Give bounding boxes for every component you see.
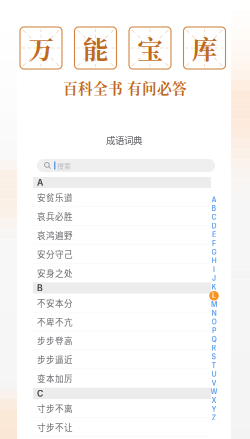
staticText: 安分守己 xyxy=(37,248,73,260)
button[interactable]: 安贫乐道 xyxy=(33,188,211,207)
button[interactable]: D xyxy=(208,222,219,230)
button[interactable]: S xyxy=(208,352,219,361)
button[interactable]: P xyxy=(208,326,219,335)
button[interactable]: R xyxy=(208,344,219,352)
staticText: 百科全书 有问必答 xyxy=(63,77,187,98)
staticText: H xyxy=(211,257,216,265)
staticText: 能 xyxy=(83,30,108,66)
staticText: 搜索 xyxy=(57,160,71,170)
staticText: 寸步不让 xyxy=(37,421,73,434)
button[interactable]: Z xyxy=(208,413,219,422)
staticText: 不卑不亢 xyxy=(37,316,73,328)
staticText: F xyxy=(212,239,216,248)
staticText: P xyxy=(212,326,216,335)
staticText: X xyxy=(211,396,216,405)
button[interactable]: A xyxy=(208,195,219,204)
staticText: M xyxy=(211,300,217,309)
staticText: 哀兵必胜 xyxy=(37,210,73,223)
staticText: D xyxy=(211,222,216,230)
staticText: 宝 xyxy=(137,30,162,66)
button[interactable]: 寸步不离 xyxy=(33,399,211,418)
button[interactable]: K xyxy=(208,283,219,291)
button[interactable]: Q xyxy=(208,335,219,344)
staticText: O xyxy=(211,318,216,326)
staticText: 安身之处 xyxy=(37,267,73,279)
staticText: A xyxy=(211,196,216,204)
staticText: S xyxy=(211,353,216,361)
button[interactable]: 变本加厉 xyxy=(33,369,211,388)
staticText: 安贫乐道 xyxy=(37,191,73,204)
button[interactable]: N xyxy=(208,309,219,318)
staticText: 不安本分 xyxy=(37,297,73,309)
staticText: C xyxy=(37,388,43,399)
staticText: 变本加厉 xyxy=(37,372,73,385)
staticText: Q xyxy=(211,335,216,344)
staticText: 步步逼近 xyxy=(37,353,73,366)
staticText: 哀鸿遍野 xyxy=(37,229,73,241)
staticText: 步步登高 xyxy=(37,335,73,347)
button[interactable]: C xyxy=(208,213,219,222)
button[interactable]: T xyxy=(208,361,219,370)
staticText: L xyxy=(212,292,216,300)
button[interactable]: 哀兵必胜 xyxy=(33,207,211,226)
staticText: 寸步不离 xyxy=(37,402,73,415)
staticText: 成语词典 xyxy=(106,133,142,147)
button[interactable]: 安身之处 xyxy=(33,264,211,282)
button[interactable]: 不安本分 xyxy=(33,293,211,312)
staticText: J xyxy=(212,274,216,282)
button[interactable]: M xyxy=(208,300,219,309)
button[interactable]: F xyxy=(208,239,219,248)
button[interactable]: L xyxy=(208,291,219,300)
button[interactable]: 步步逼近 xyxy=(33,350,211,369)
button[interactable]: O xyxy=(208,318,219,326)
button[interactable]: V xyxy=(208,379,219,387)
staticText: 库 xyxy=(192,30,217,66)
staticText: W xyxy=(210,387,217,396)
staticText: Z xyxy=(211,414,216,422)
button[interactable]: G xyxy=(208,248,219,256)
staticText: B xyxy=(37,283,43,293)
button[interactable]: U xyxy=(208,370,219,379)
staticText: A xyxy=(37,177,43,188)
button[interactable]: E xyxy=(208,230,219,239)
button[interactable]: Y xyxy=(208,405,219,413)
button[interactable]: W xyxy=(208,387,219,396)
staticText: T xyxy=(211,361,216,370)
staticText: R xyxy=(211,344,216,352)
button[interactable]: B xyxy=(208,204,219,213)
button[interactable]: 寸步不让 xyxy=(33,418,211,437)
staticText: E xyxy=(212,230,216,239)
staticText: 万 xyxy=(28,30,53,66)
staticText: V xyxy=(211,379,216,387)
button[interactable]: H xyxy=(208,256,219,265)
button[interactable]: 安分守己 xyxy=(33,245,211,264)
staticText: B xyxy=(211,204,216,213)
staticText: G xyxy=(211,248,216,256)
button[interactable]: J xyxy=(208,274,219,283)
staticText: U xyxy=(211,370,216,378)
staticText: Y xyxy=(211,405,216,413)
button[interactable]: 步步登高 xyxy=(33,331,211,350)
staticText: C xyxy=(211,213,216,221)
button[interactable]: I xyxy=(208,265,219,274)
button[interactable]: X xyxy=(208,396,219,405)
button[interactable]: 哀鸿遍野 xyxy=(33,226,211,245)
button[interactable]: 不卑不亢 xyxy=(33,312,211,331)
staticText: N xyxy=(211,309,216,317)
staticText: K xyxy=(211,283,216,291)
staticText: I xyxy=(213,265,215,274)
